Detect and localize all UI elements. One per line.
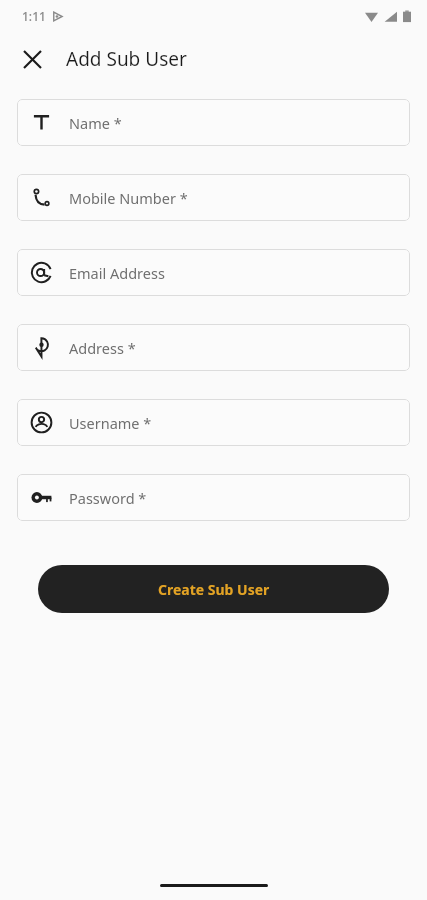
- button[interactable]: Mobile Number *: [17, 174, 410, 221]
- button[interactable]: Create Sub User: [38, 565, 389, 613]
- staticText: 1:11: [22, 8, 46, 24]
- button[interactable]: Address *: [17, 324, 410, 371]
- staticText: Password *: [69, 488, 147, 508]
- staticText: Email Address: [69, 263, 165, 283]
- staticText: Address *: [69, 338, 136, 358]
- staticText: Username *: [69, 413, 152, 433]
- button[interactable]: Close: [12, 39, 52, 79]
- staticText: Name *: [69, 113, 122, 133]
- staticText: Add Sub User: [66, 46, 187, 72]
- button[interactable]: Name *: [17, 99, 410, 146]
- button[interactable]: Username *: [17, 399, 410, 446]
- button[interactable]: Password *: [17, 474, 410, 521]
- button[interactable]: Email Address: [17, 249, 410, 296]
- staticText: Mobile Number *: [69, 188, 188, 208]
- staticText: Create Sub User: [158, 580, 270, 599]
